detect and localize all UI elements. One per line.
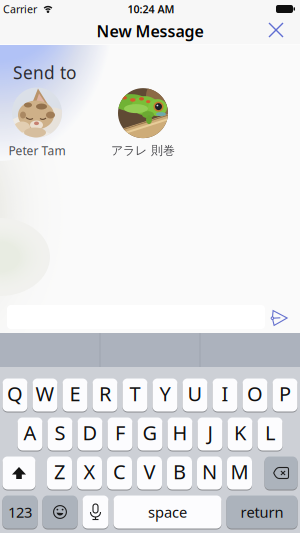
staticText: 10:24 AM	[127, 2, 174, 16]
staticText: Send to	[13, 61, 76, 84]
staticText: C	[113, 458, 126, 485]
staticText: J	[207, 419, 212, 446]
button[interactable]: P	[272, 378, 297, 412]
staticText: X	[83, 458, 95, 485]
staticText: S	[54, 419, 65, 446]
staticText: O	[247, 380, 263, 407]
staticText: Carrier	[3, 2, 37, 16]
staticText: Q	[7, 380, 23, 407]
staticText: アラレ 則巻	[111, 143, 175, 158]
button[interactable]: アラレ 則巻	[111, 88, 175, 158]
staticText: P	[279, 380, 291, 407]
button[interactable]: Shift	[2, 456, 35, 490]
staticText: Z	[54, 458, 65, 485]
staticText: M	[230, 458, 248, 485]
staticText: N	[202, 458, 217, 485]
staticText: 123	[8, 502, 32, 522]
staticText: B	[173, 458, 186, 485]
button[interactable]: K	[227, 417, 252, 451]
button[interactable]: Dictate	[82, 495, 108, 529]
button[interactable]: G	[137, 417, 162, 451]
button[interactable]: O	[242, 378, 267, 412]
staticText: H	[172, 419, 187, 446]
button[interactable]: E	[62, 378, 87, 412]
button[interactable]: I	[212, 378, 237, 412]
staticText: W	[35, 380, 54, 407]
button[interactable]: Send	[265, 304, 294, 332]
button[interactable]: L	[257, 417, 282, 451]
staticText: E	[69, 380, 80, 407]
button[interactable]: U	[182, 378, 207, 412]
button[interactable]: V	[137, 456, 162, 490]
button[interactable]: F	[107, 417, 132, 451]
button[interactable]: Delete	[264, 456, 297, 490]
button[interactable]: B	[167, 456, 192, 490]
button[interactable]: Z	[47, 456, 72, 490]
staticText: Y	[159, 380, 170, 407]
button[interactable]: N	[197, 456, 222, 490]
button[interactable]: A	[17, 417, 42, 451]
button[interactable]: S	[47, 417, 72, 451]
button[interactable]: M	[227, 456, 252, 490]
staticText: U	[187, 380, 202, 407]
staticText: T	[129, 380, 140, 407]
staticText: D	[82, 419, 97, 446]
staticText: space	[148, 502, 187, 522]
button[interactable]: return	[226, 495, 297, 529]
button[interactable]: R	[92, 378, 117, 412]
staticText: A	[23, 419, 36, 446]
button[interactable]: Peter Tam	[8, 87, 65, 158]
button[interactable]: D	[77, 417, 102, 451]
staticText: F	[115, 419, 125, 446]
button[interactable]: 123	[2, 495, 37, 529]
button[interactable]: J	[197, 417, 222, 451]
staticText: R	[99, 380, 111, 407]
staticText: G	[142, 419, 157, 446]
button[interactable]: Close	[262, 16, 290, 44]
staticText: I	[221, 380, 228, 407]
staticText: Peter Tam	[8, 142, 65, 158]
button[interactable]: X	[77, 456, 102, 490]
button[interactable]: Y	[152, 378, 177, 412]
button[interactable]: Emoji	[42, 495, 77, 529]
button[interactable]: C	[107, 456, 132, 490]
button[interactable]: T	[122, 378, 147, 412]
staticText: K	[234, 419, 246, 446]
staticText: L	[265, 419, 275, 446]
button[interactable]: space	[113, 495, 221, 529]
staticText: return	[240, 502, 283, 522]
staticText: V	[143, 458, 155, 485]
button[interactable]: Q	[2, 378, 27, 412]
button[interactable]: H	[167, 417, 192, 451]
staticText: New Message	[96, 20, 203, 42]
button[interactable]: W	[32, 378, 57, 412]
